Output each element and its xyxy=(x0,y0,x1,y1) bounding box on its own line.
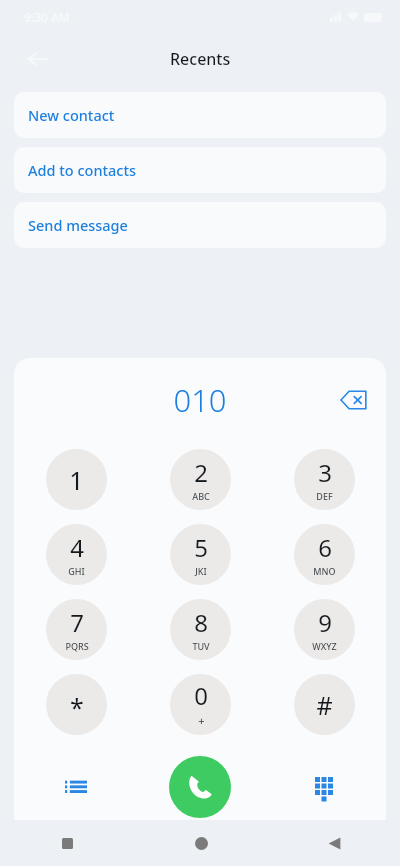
button[interactable]: Back xyxy=(314,823,354,863)
staticText: GHI xyxy=(68,565,85,577)
staticText: 9:30 AM xyxy=(24,9,70,25)
staticText: 010 xyxy=(173,379,227,421)
staticText: 6 xyxy=(318,531,332,564)
staticText: ABC xyxy=(192,490,210,502)
button[interactable]: 2 xyxy=(170,449,231,510)
button[interactable]: Send message xyxy=(14,202,386,248)
button[interactable]: 5 xyxy=(170,524,231,585)
button[interactable]: 3 xyxy=(294,449,355,510)
button[interactable]: 8 xyxy=(170,599,231,660)
button[interactable]: Add to contacts xyxy=(14,147,386,193)
button[interactable]: 9 xyxy=(294,599,355,660)
staticText: WXYZ xyxy=(312,640,337,652)
staticText: 3 xyxy=(318,456,332,489)
staticText: MNO xyxy=(313,565,336,577)
staticText: Recents xyxy=(170,48,231,70)
button[interactable]: # xyxy=(294,674,355,735)
staticText: PQRS xyxy=(65,640,89,652)
button[interactable]: Recent apps xyxy=(47,823,87,863)
button[interactable]: Call xyxy=(169,756,231,818)
staticText: 0 xyxy=(194,679,208,712)
button[interactable]: 0 xyxy=(170,674,231,735)
staticText: 4 xyxy=(70,531,84,564)
staticText: + xyxy=(198,713,205,728)
staticText: JKI xyxy=(195,565,207,577)
staticText: Send message xyxy=(28,215,128,235)
button[interactable]: * xyxy=(46,674,107,735)
staticText: Add to contacts xyxy=(28,160,137,180)
button[interactable]: Call log xyxy=(52,763,100,811)
button[interactable]: Home xyxy=(181,823,221,863)
staticText: TUV xyxy=(192,640,210,652)
staticText: * xyxy=(70,690,84,724)
button[interactable]: 7 xyxy=(46,599,107,660)
button[interactable]: 1 xyxy=(46,449,107,510)
staticText: 8 xyxy=(194,606,208,639)
button[interactable]: New contact xyxy=(14,92,386,138)
button[interactable]: 4 xyxy=(46,524,107,585)
staticText: 2 xyxy=(194,456,208,489)
staticText: New contact xyxy=(28,105,115,125)
button[interactable]: 6 xyxy=(294,524,355,585)
button[interactable]: Keypad xyxy=(300,763,348,811)
staticText: 1 xyxy=(69,463,84,497)
staticText: 7 xyxy=(70,606,84,639)
staticText: # xyxy=(316,688,333,722)
staticText: DEF xyxy=(316,490,333,502)
staticText: 9 xyxy=(318,606,332,639)
button[interactable]: Backspace xyxy=(332,378,376,422)
staticText: 5 xyxy=(194,531,208,564)
